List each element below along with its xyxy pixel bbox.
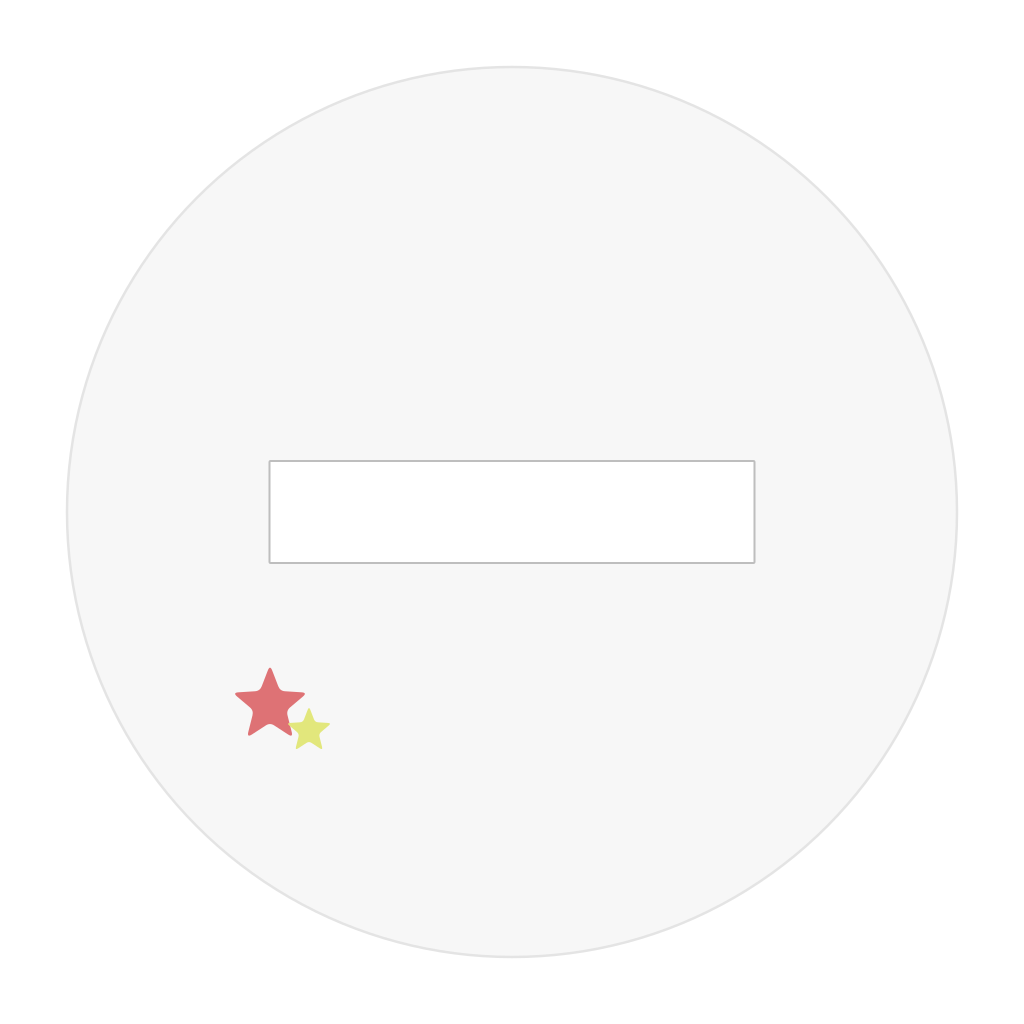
button[interactable]: Text field: [269, 461, 754, 563]
